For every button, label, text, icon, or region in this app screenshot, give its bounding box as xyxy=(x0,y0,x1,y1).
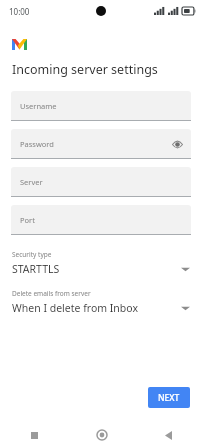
staticText: Server xyxy=(20,177,43,187)
button[interactable]: Port xyxy=(11,205,191,235)
button[interactable]: Username xyxy=(11,91,191,121)
staticText: NEXT xyxy=(158,392,180,404)
button[interactable]: Show password xyxy=(170,137,184,151)
button[interactable]: Home xyxy=(68,422,135,448)
button[interactable]: Recent apps xyxy=(0,422,68,448)
button[interactable]: Security type xyxy=(0,250,202,276)
button[interactable]: NEXT xyxy=(148,387,190,408)
button[interactable]: Back xyxy=(135,422,202,448)
staticText: Delete emails from server xyxy=(12,289,91,298)
staticText: Username xyxy=(20,101,57,111)
button[interactable]: Password xyxy=(11,129,191,159)
staticText: Security type xyxy=(12,250,52,259)
staticText: STARTTLS xyxy=(12,262,181,276)
staticText: When I delete from Inbox xyxy=(12,301,181,315)
button[interactable]: Server xyxy=(11,167,191,197)
button[interactable]: Delete emails from server xyxy=(0,289,202,315)
staticText: Incoming server settings xyxy=(12,61,158,78)
staticText: 10:00 xyxy=(9,6,30,17)
staticText: Port xyxy=(20,215,35,225)
staticText: Password xyxy=(20,139,54,149)
